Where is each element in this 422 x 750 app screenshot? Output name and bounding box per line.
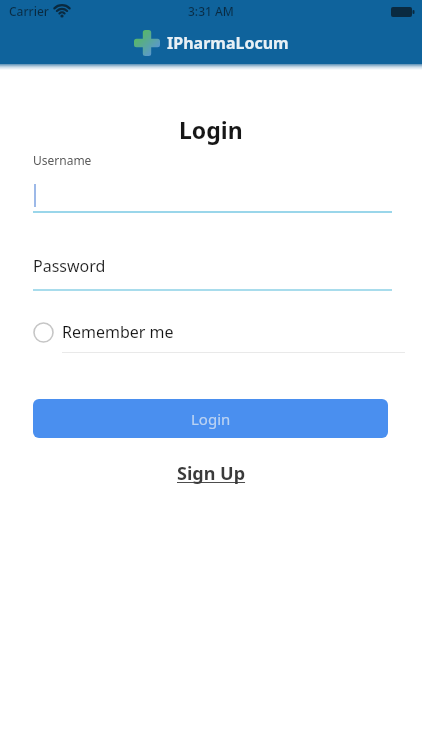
- staticText: IPharmaLocum: [167, 32, 289, 54]
- staticText: Sign Up: [177, 461, 246, 486]
- staticText: Login: [179, 114, 243, 145]
- staticText: Remember me: [62, 321, 174, 343]
- staticText: Login: [191, 409, 231, 429]
- button[interactable]: Sign Up: [177, 461, 246, 486]
- staticText: Username: [33, 152, 92, 168]
- button[interactable]: Password: [33, 250, 392, 291]
- button[interactable]: Login: [33, 399, 388, 438]
- staticText: Carrier: [9, 3, 49, 19]
- button[interactable]: [33, 176, 392, 213]
- staticText: 3:31 AM: [188, 3, 234, 19]
- button[interactable]: Remember me: [33, 321, 174, 343]
- staticText: Password: [33, 255, 106, 277]
